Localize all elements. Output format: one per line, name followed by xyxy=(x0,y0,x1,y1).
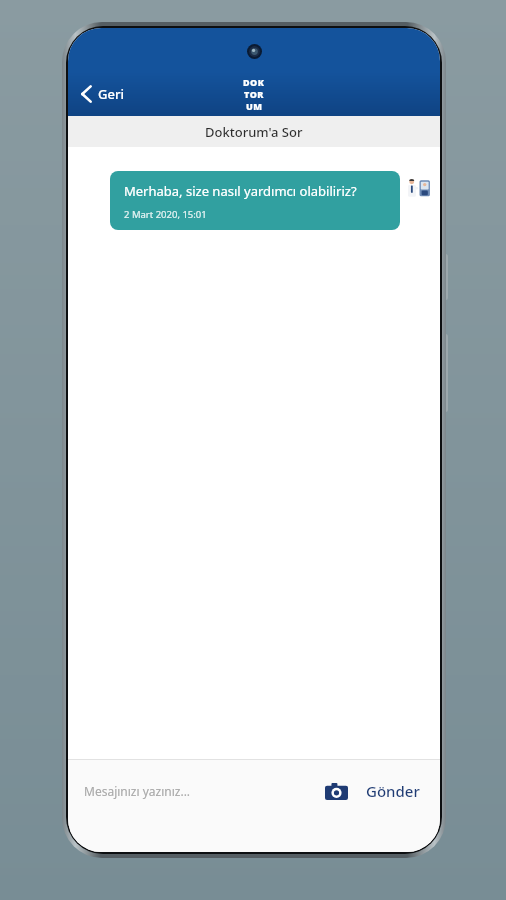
button[interactable]: Mesajınızı yazınız... xyxy=(84,775,319,807)
button[interactable]: Gönder xyxy=(362,775,424,807)
button[interactable]: Geri xyxy=(68,78,138,110)
button[interactable]: Doktorum logo xyxy=(237,74,271,114)
other: Doktor avatarı xyxy=(406,175,432,201)
staticText: Merhaba, size nasıl yardımcı olabiliriz? xyxy=(124,182,357,200)
staticText: Doktorum'a Sor xyxy=(205,123,303,141)
staticText: 2 Mart 2020, 15:01 xyxy=(124,208,207,221)
staticText: Mesajınızı yazınız... xyxy=(84,783,191,799)
button[interactable]: Merhaba, size nasıl yardımcı olabiliriz? xyxy=(110,171,400,230)
staticText: TOR xyxy=(244,88,264,100)
staticText: UM xyxy=(246,100,263,112)
staticText: Gönder xyxy=(366,781,420,801)
staticText: Geri xyxy=(98,85,124,103)
button[interactable]: Fotoğraf ekle xyxy=(319,777,354,806)
staticText: DOK xyxy=(243,76,265,88)
